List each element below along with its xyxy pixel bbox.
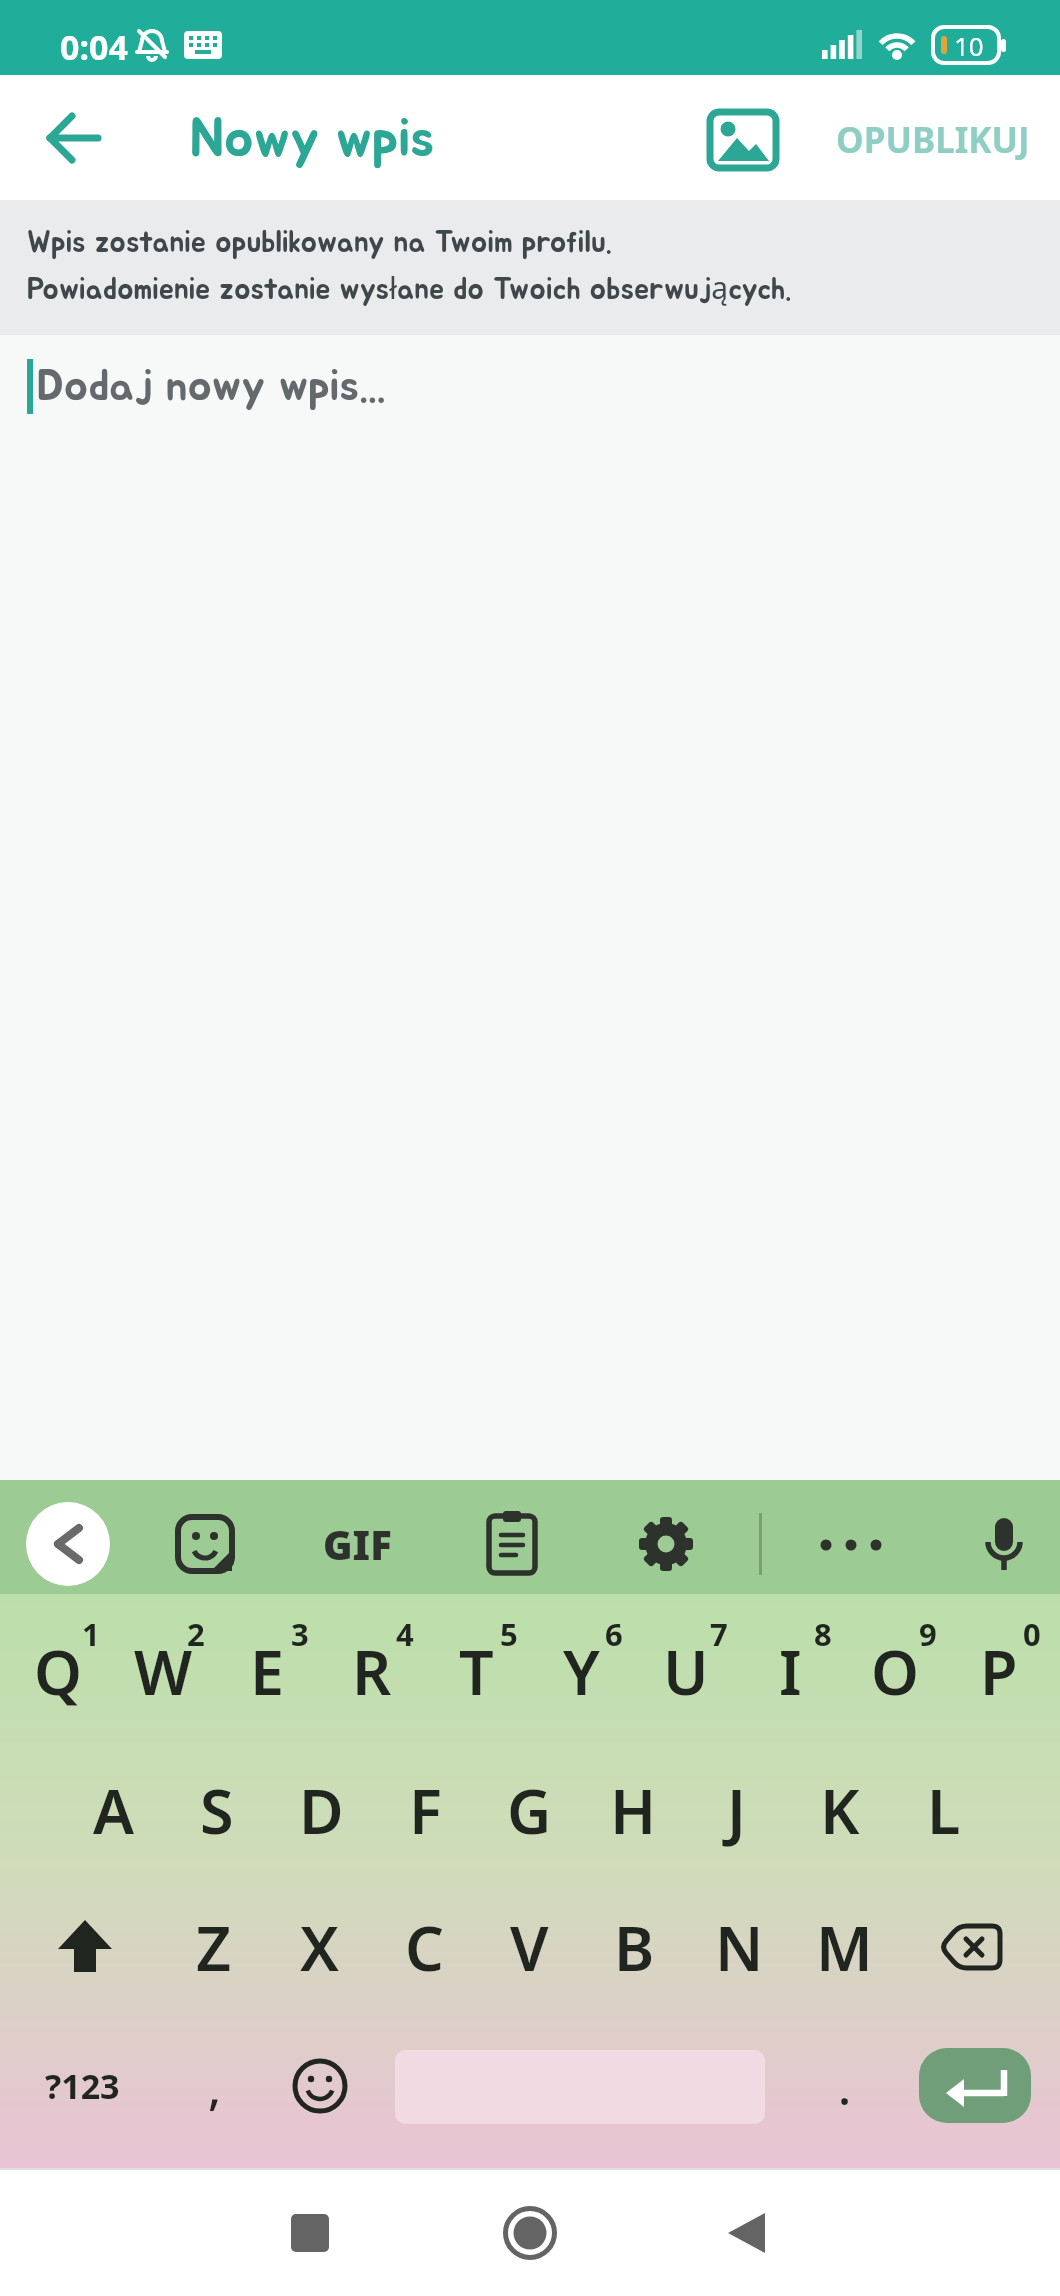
button[interactable]: A <box>62 1746 164 1874</box>
button[interactable] <box>28 93 118 183</box>
button[interactable]: U <box>635 1607 737 1735</box>
button[interactable]: OPUBLIKUJ <box>818 105 1048 175</box>
staticText: R <box>352 1630 392 1713</box>
staticText: . <box>838 2054 852 2119</box>
staticText: , <box>208 2054 222 2119</box>
staticText: W <box>134 1630 193 1713</box>
button[interactable]: O <box>844 1607 946 1735</box>
button[interactable]: Y <box>530 1607 632 1735</box>
button[interactable]: . <box>805 2051 885 2121</box>
button[interactable] <box>0 335 1060 1480</box>
button[interactable]: , <box>175 2051 255 2121</box>
button[interactable]: X <box>268 1883 370 2011</box>
staticText: B <box>614 1906 655 1989</box>
button[interactable] <box>811 1504 891 1584</box>
staticText: Wpis zostanie opublikowany na Twoim prof… <box>27 228 792 308</box>
staticText: D <box>299 1769 344 1852</box>
staticText: C <box>405 1906 444 1989</box>
button[interactable]: GIF <box>300 1509 415 1579</box>
button[interactable] <box>925 1899 1021 1995</box>
staticText: F <box>409 1769 442 1852</box>
staticText: E <box>250 1630 285 1713</box>
button[interactable]: I <box>739 1607 841 1735</box>
staticText: 6 <box>605 1613 623 1653</box>
button[interactable]: B <box>583 1883 685 2011</box>
staticText: 0:04 <box>60 24 128 66</box>
staticText: 7 <box>710 1613 728 1653</box>
staticText: Nowy wpis <box>190 113 435 167</box>
staticText: 1 <box>82 1613 100 1653</box>
staticText: G <box>507 1769 552 1852</box>
button[interactable]: M <box>793 1883 895 2011</box>
staticText: J <box>727 1769 746 1852</box>
button[interactable]: C <box>373 1883 475 2011</box>
button[interactable]: J <box>685 1746 787 1874</box>
staticText: A <box>93 1769 134 1852</box>
button[interactable]: Z <box>163 1883 265 2011</box>
button[interactable] <box>26 1502 110 1586</box>
staticText: 8 <box>814 1613 832 1653</box>
staticText: 3 <box>291 1613 309 1653</box>
button[interactable] <box>280 2046 360 2126</box>
staticText: X <box>300 1906 339 1989</box>
button[interactable] <box>964 1504 1044 1584</box>
staticText: I <box>779 1630 802 1713</box>
staticText: Y <box>563 1630 600 1713</box>
button[interactable] <box>37 1899 133 1995</box>
button[interactable] <box>484 2187 576 2279</box>
staticText: U <box>663 1630 709 1713</box>
button[interactable]: G <box>478 1746 580 1874</box>
staticText: L <box>927 1769 961 1852</box>
staticText: M <box>816 1906 873 1989</box>
staticText: Q <box>34 1630 83 1713</box>
button[interactable]: W <box>112 1607 214 1735</box>
button[interactable] <box>919 2048 1031 2123</box>
staticText: Dodaj nowy wpis... <box>37 365 386 409</box>
button[interactable]: Q <box>7 1607 109 1735</box>
button[interactable]: D <box>270 1746 372 1874</box>
staticText: N <box>715 1906 764 1989</box>
staticText: T <box>459 1630 494 1713</box>
staticText: ?123 <box>45 2063 120 2109</box>
staticText: 4 <box>396 1613 414 1653</box>
button[interactable] <box>472 1504 552 1584</box>
button[interactable]: ?123 <box>30 2051 134 2121</box>
button[interactable] <box>690 100 796 180</box>
staticText: Z <box>196 1906 232 1989</box>
staticText: H <box>610 1769 657 1852</box>
button[interactable] <box>699 2187 791 2279</box>
staticText: 10 <box>954 28 984 63</box>
button[interactable]: F <box>374 1746 476 1874</box>
staticText: 2 <box>187 1613 205 1653</box>
button[interactable]: S <box>166 1746 268 1874</box>
button[interactable]: T <box>425 1607 527 1735</box>
staticText: P <box>980 1630 1018 1713</box>
staticText: 9 <box>919 1613 937 1653</box>
button[interactable] <box>626 1504 706 1584</box>
staticText: 5 <box>500 1613 518 1653</box>
button[interactable]: P <box>948 1607 1050 1735</box>
button[interactable]: H <box>582 1746 684 1874</box>
staticText: V <box>510 1906 549 1989</box>
staticText: OPUBLIKUJ <box>836 116 1030 164</box>
staticText: S <box>200 1769 234 1852</box>
button[interactable]: E <box>216 1607 318 1735</box>
button[interactable]: V <box>478 1883 580 2011</box>
button[interactable] <box>264 2187 356 2279</box>
button[interactable] <box>165 1504 245 1584</box>
staticText: 0 <box>1023 1613 1041 1653</box>
staticText: O <box>871 1630 920 1713</box>
staticText: K <box>820 1769 860 1852</box>
button[interactable]: K <box>789 1746 891 1874</box>
button[interactable]: R <box>321 1607 423 1735</box>
button[interactable]: N <box>688 1883 790 2011</box>
staticText: GIF <box>323 1517 392 1571</box>
button[interactable]: L <box>893 1746 995 1874</box>
